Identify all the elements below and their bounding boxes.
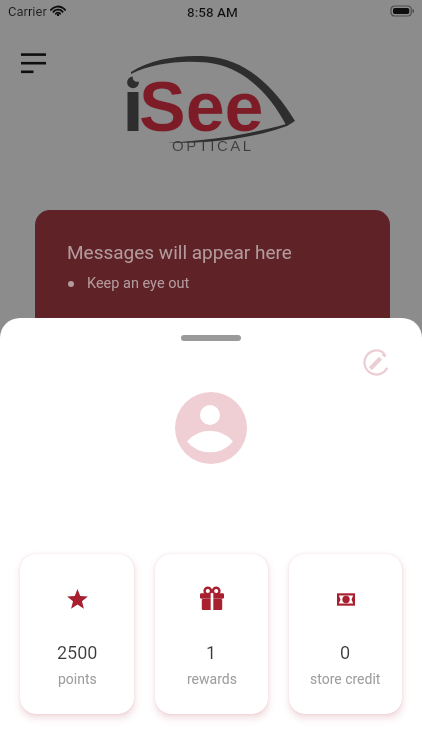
staticText: store credit <box>310 671 381 687</box>
button[interactable]: 0 <box>289 554 402 714</box>
staticText: Messages will appear here <box>67 241 292 263</box>
button[interactable]: Edit profile <box>354 340 398 384</box>
button[interactable]: 2500 <box>20 554 134 714</box>
staticText: 0 <box>340 642 351 663</box>
staticText: See <box>139 68 264 146</box>
staticText: Carrier <box>8 4 47 19</box>
button[interactable]: Menu <box>11 41 55 85</box>
button[interactable]: 1 <box>155 554 268 714</box>
staticText: OPTICAL <box>172 137 254 154</box>
button[interactable]: More <box>322 340 366 370</box>
staticText: 2500 <box>57 642 98 663</box>
staticText: rewards <box>187 671 237 687</box>
staticText: 8:58 AM <box>187 4 238 20</box>
staticText: 1 <box>206 642 217 663</box>
staticText: points <box>58 671 97 687</box>
staticText: Keep an eye out <box>87 275 190 292</box>
